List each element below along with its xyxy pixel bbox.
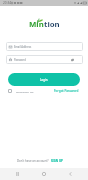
button[interactable]: Password bbox=[6, 55, 83, 64]
staticText: 20:34 bbox=[3, 1, 12, 5]
button[interactable]: Back bbox=[66, 168, 74, 180]
button[interactable]: Login bbox=[8, 73, 80, 86]
button[interactable]: Remember Me bbox=[8, 89, 34, 93]
button[interactable]: Recent apps bbox=[13, 168, 21, 180]
button[interactable]: Home bbox=[40, 168, 48, 180]
button[interactable]: Forgot Password bbox=[54, 89, 79, 93]
button[interactable]: SIGN UP bbox=[51, 159, 63, 163]
button[interactable]: Show password bbox=[70, 57, 75, 62]
staticText: Remember Me bbox=[16, 90, 34, 93]
staticText: Login bbox=[40, 78, 48, 82]
staticText: Password bbox=[14, 58, 26, 62]
button[interactable]: Email Address bbox=[6, 42, 83, 51]
staticText: Email Address bbox=[14, 45, 32, 49]
staticText: tion bbox=[44, 19, 60, 30]
staticText: Min bbox=[29, 19, 44, 30]
staticText: Don't have an account? bbox=[17, 159, 49, 163]
